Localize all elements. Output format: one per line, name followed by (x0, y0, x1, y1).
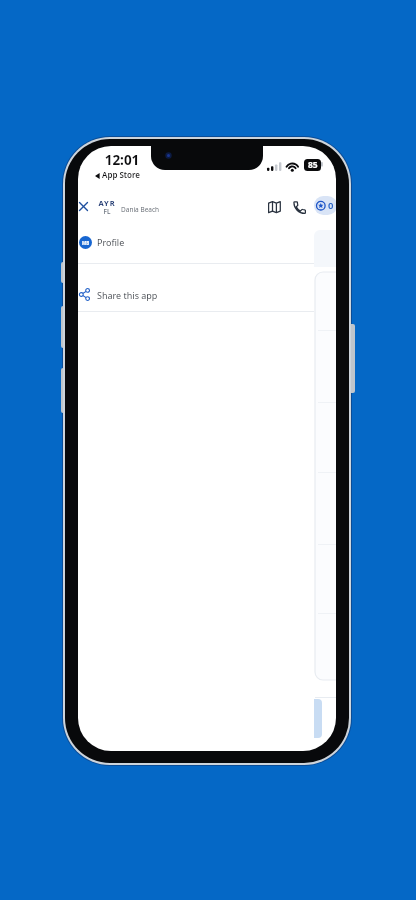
staticText: Profile (97, 236, 125, 248)
staticText: AYR (98, 198, 116, 207)
staticText: App Store (102, 169, 141, 180)
staticText: Share this app (97, 289, 158, 301)
staticText: Dania Beach (121, 205, 160, 214)
button[interactable]: MB (78, 226, 314, 263)
button[interactable] (264, 197, 284, 217)
button[interactable]: Share this app (78, 263, 314, 311)
staticText: 85 (308, 159, 318, 171)
button[interactable]: 0 (314, 196, 336, 215)
staticText: 0 (328, 199, 334, 212)
button[interactable] (78, 198, 92, 214)
staticText: MB (82, 240, 90, 246)
staticText: 12:01 (98, 151, 146, 167)
staticText: FL (98, 207, 116, 215)
button[interactable] (289, 197, 311, 217)
